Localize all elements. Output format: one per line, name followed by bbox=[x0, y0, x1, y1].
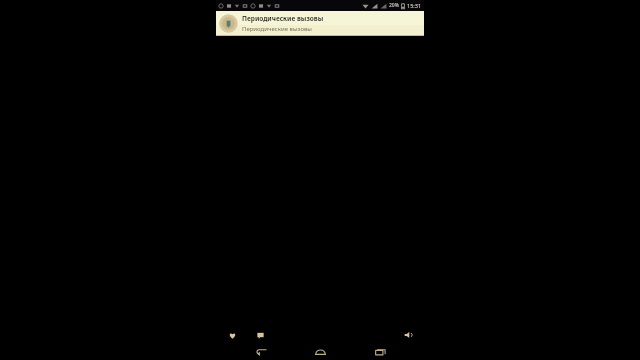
button[interactable]: Home bbox=[305, 342, 335, 360]
button[interactable]: Volume bbox=[402, 329, 414, 341]
button[interactable]: Back bbox=[246, 342, 276, 360]
staticText: Периодические вызовы bbox=[242, 25, 312, 33]
staticText: Периодические вызовы bbox=[242, 14, 324, 23]
button[interactable]: Favorites bbox=[226, 329, 238, 341]
button[interactable]: Messages bbox=[254, 329, 266, 341]
staticText: 15:31 bbox=[407, 2, 422, 9]
button[interactable]: Recent apps bbox=[365, 342, 395, 360]
staticText: 20% bbox=[389, 2, 399, 9]
button[interactable]: Периодические вызовы bbox=[216, 11, 424, 35]
